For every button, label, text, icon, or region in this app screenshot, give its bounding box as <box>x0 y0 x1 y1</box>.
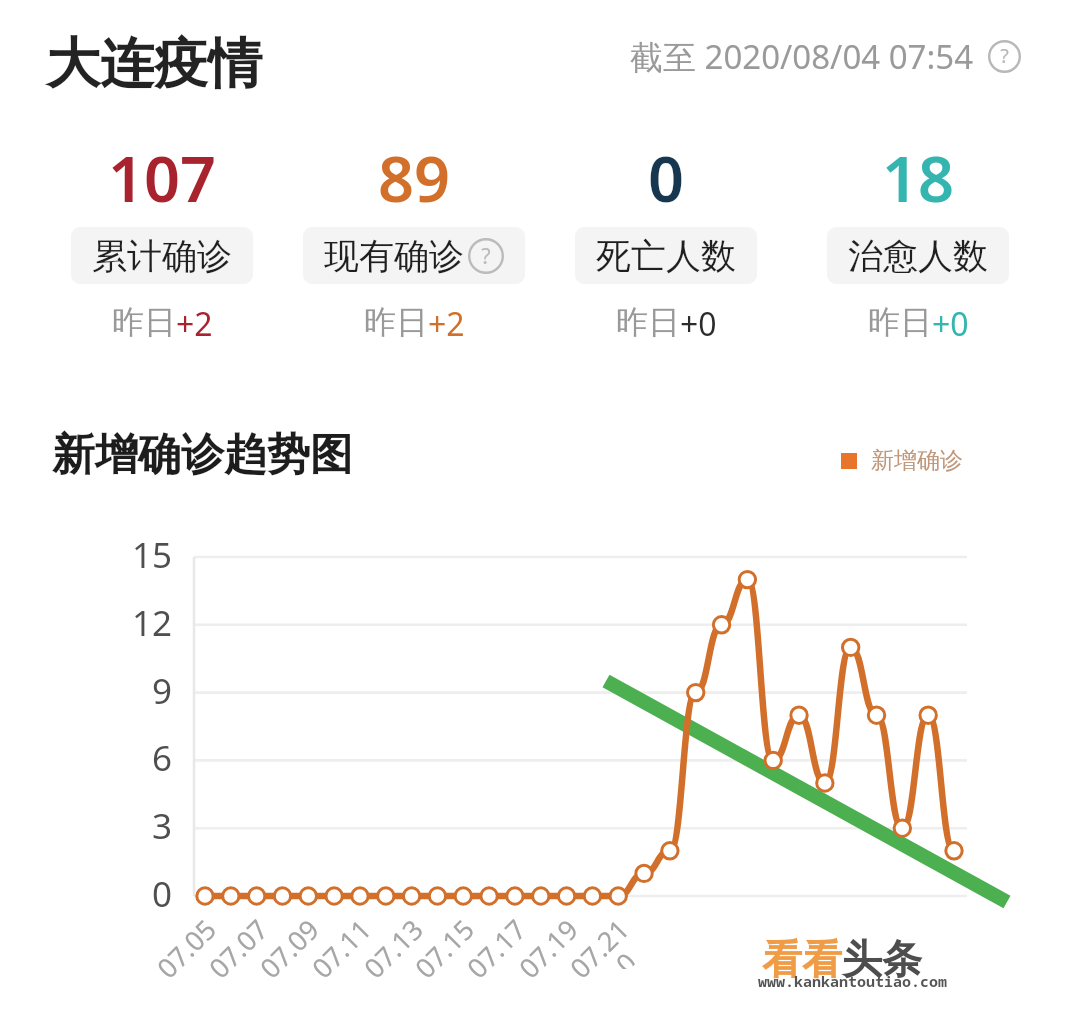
staticText: 107 <box>108 135 217 221</box>
button[interactable]: 截至 2020/08/04 07:54 <box>630 34 1021 79</box>
staticText: 头条 <box>842 934 922 984</box>
staticText: 新增确诊趋势图 <box>52 428 353 482</box>
staticText: 现有确诊 <box>324 234 464 278</box>
staticText: 累计确诊 <box>92 234 232 278</box>
staticText: 昨日 <box>868 302 932 342</box>
staticText: +2 <box>176 302 213 346</box>
staticText: 07.19 <box>510 911 586 986</box>
staticText: 0 <box>648 135 685 221</box>
staticText: 大连疫情 <box>46 30 262 98</box>
button[interactable]: 107 <box>36 135 288 346</box>
staticText: 看看 <box>762 934 842 984</box>
staticText: 07.09 <box>251 911 327 986</box>
staticText: 07.21 <box>561 911 637 986</box>
button[interactable]: 89 <box>288 135 540 346</box>
button[interactable]: 0 <box>540 135 792 346</box>
staticText: +0 <box>932 302 969 346</box>
staticText: 15 <box>0 531 172 579</box>
button[interactable]: 新增确诊 <box>841 446 963 475</box>
staticText: 截至 2020/08/04 07:54 <box>630 34 974 79</box>
staticText: +2 <box>428 302 465 346</box>
staticText: 0 <box>617 944 637 969</box>
staticText: 18 <box>882 135 955 221</box>
staticText: 昨日 <box>364 302 428 342</box>
staticText: 昨日 <box>616 302 680 342</box>
staticText: 9 <box>0 667 172 715</box>
staticText: 89 <box>378 135 451 221</box>
staticText: 6 <box>0 734 172 782</box>
staticText: 07.17 <box>458 911 534 986</box>
staticText: 07.07 <box>200 911 276 986</box>
staticText: 07.13 <box>355 911 431 986</box>
staticText: +0 <box>680 302 717 346</box>
staticText: www.kankantoutiao.com <box>758 971 948 991</box>
staticText: 治愈人数 <box>848 234 988 278</box>
staticText: ? <box>481 241 491 270</box>
staticText: 12 <box>0 599 172 647</box>
staticText: ? <box>1000 42 1009 69</box>
staticText: 死亡人数 <box>596 234 736 278</box>
staticText: 3 <box>0 802 172 850</box>
staticText: 07.15 <box>406 911 482 986</box>
button[interactable]: Data update time info <box>988 40 1021 73</box>
staticText: 07.11 <box>303 911 379 986</box>
staticText: 0 <box>0 870 172 918</box>
staticText: 07.05 <box>148 911 224 986</box>
staticText: 新增确诊 <box>871 446 963 475</box>
button[interactable]: 18 <box>792 135 1044 346</box>
button[interactable]: About 现有确诊 <box>468 238 504 274</box>
staticText: 昨日 <box>112 302 176 342</box>
